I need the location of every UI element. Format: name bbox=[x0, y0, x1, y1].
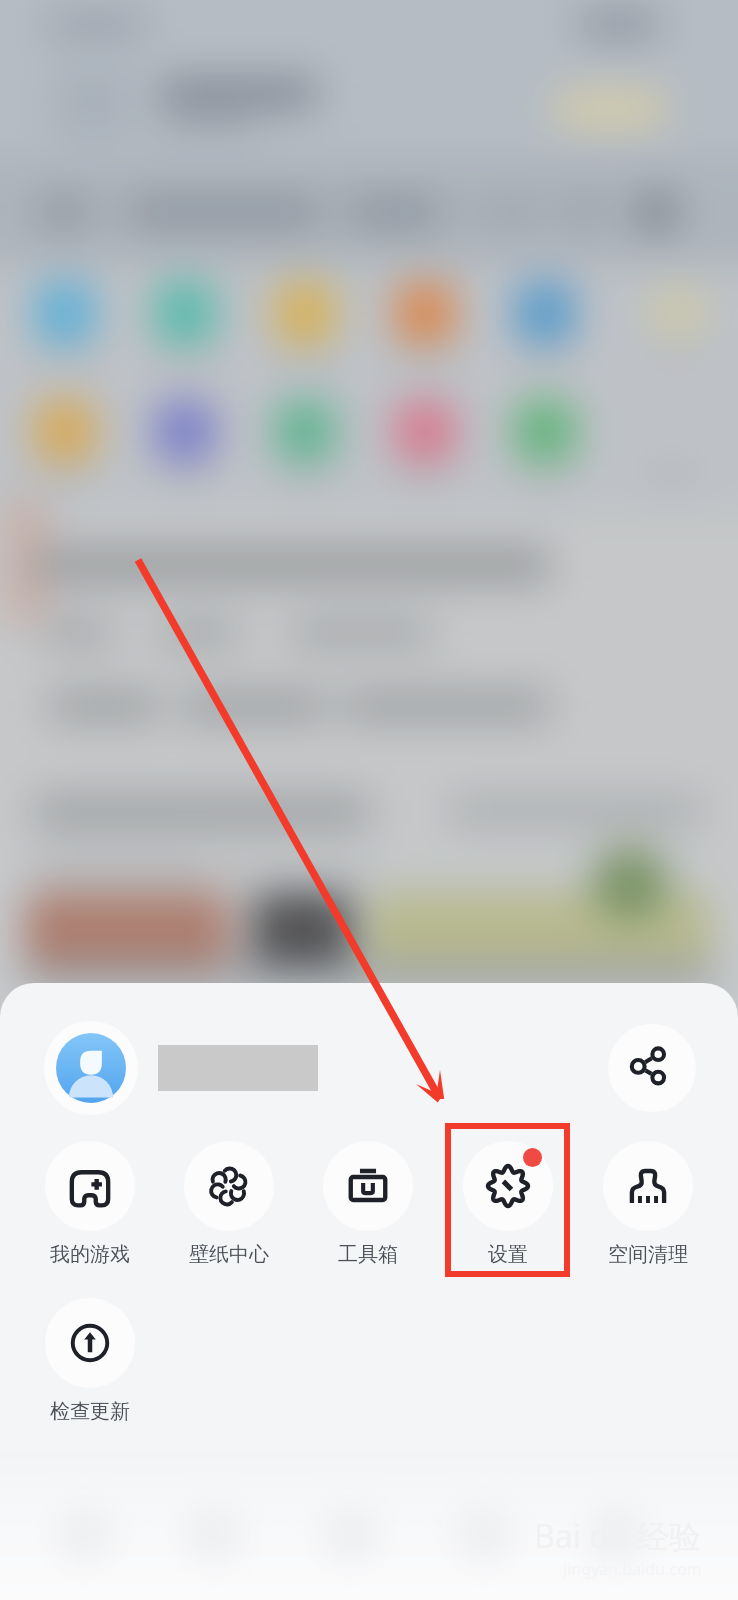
button[interactable]: 壁纸中心 bbox=[159, 1132, 298, 1269]
button[interactable]: 我的游戏 bbox=[20, 1132, 159, 1269]
staticText: 设置 bbox=[488, 1242, 528, 1267]
button[interactable]: 设置 bbox=[438, 1132, 578, 1269]
staticText: 工具箱 bbox=[338, 1242, 398, 1267]
staticText: 壁纸中心 bbox=[189, 1242, 269, 1267]
button[interactable]: 工具箱 bbox=[298, 1132, 438, 1269]
staticText: 检查更新 bbox=[50, 1399, 130, 1424]
staticText: Bai du 经验 bbox=[534, 1514, 702, 1558]
button[interactable]: 检查更新 bbox=[20, 1289, 160, 1426]
staticText: 空间清理 bbox=[608, 1242, 688, 1267]
button[interactable]: Share bbox=[608, 1024, 696, 1112]
button[interactable]: Account avatar bbox=[44, 1021, 138, 1115]
button[interactable]: 空间清理 bbox=[578, 1132, 718, 1269]
staticText: 我的游戏 bbox=[50, 1242, 130, 1267]
